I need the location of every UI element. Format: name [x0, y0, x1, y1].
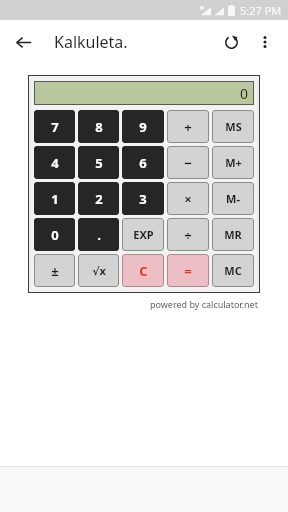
button[interactable]: M+: [212, 146, 254, 179]
staticText: 9: [139, 118, 147, 136]
staticText: 2: [95, 190, 103, 208]
staticText: 1: [51, 190, 59, 208]
button[interactable]: 8: [78, 110, 119, 143]
button[interactable]: More options: [248, 25, 282, 59]
button[interactable]: √x: [78, 254, 119, 287]
staticText: ±: [51, 262, 59, 280]
button[interactable]: M-: [212, 182, 254, 215]
button[interactable]: Back: [6, 25, 40, 59]
button[interactable]: 6: [122, 146, 164, 179]
button[interactable]: 2: [78, 182, 119, 215]
button[interactable]: MS: [212, 110, 254, 143]
staticText: 0: [240, 84, 249, 103]
staticText: 5: [95, 154, 103, 172]
button[interactable]: .: [78, 218, 119, 251]
button[interactable]: ×: [167, 182, 209, 215]
staticText: 5:27 PM: [240, 3, 282, 18]
staticText: C: [139, 262, 148, 280]
staticText: .: [97, 226, 101, 244]
staticText: MS: [225, 119, 242, 134]
button[interactable]: EXP: [122, 218, 164, 251]
staticText: 6: [139, 154, 147, 172]
button[interactable]: ÷: [167, 218, 209, 251]
button[interactable]: 3: [122, 182, 164, 215]
staticText: √x: [92, 263, 106, 278]
staticText: ÷: [184, 226, 192, 244]
staticText: =: [184, 262, 192, 280]
button[interactable]: 7: [34, 110, 75, 143]
staticText: +: [184, 118, 192, 136]
staticText: 3: [139, 190, 147, 208]
staticText: MR: [224, 227, 242, 242]
staticText: −: [184, 154, 192, 172]
staticText: EXP: [133, 227, 154, 242]
button[interactable]: MR: [212, 218, 254, 251]
staticText: ×: [184, 190, 192, 208]
button[interactable]: =: [167, 254, 209, 287]
button[interactable]: −: [167, 146, 209, 179]
button[interactable]: 4: [34, 146, 75, 179]
staticText: 0: [51, 226, 59, 244]
staticText: 4: [51, 154, 59, 172]
button[interactable]: MC: [212, 254, 254, 287]
button[interactable]: Refresh: [214, 25, 248, 59]
staticText: M+: [225, 155, 242, 170]
button[interactable]: 5: [78, 146, 119, 179]
button[interactable]: ±: [34, 254, 75, 287]
button[interactable]: +: [167, 110, 209, 143]
button[interactable]: 0: [34, 218, 75, 251]
button[interactable]: 1: [34, 182, 75, 215]
staticText: M-: [226, 191, 240, 206]
button[interactable]: 9: [122, 110, 164, 143]
staticText: MC: [224, 263, 242, 278]
staticText: powered by calculator.net: [150, 298, 258, 310]
staticText: Kalkuleta.: [54, 31, 128, 53]
button[interactable]: C: [122, 254, 164, 287]
staticText: 7: [51, 118, 59, 136]
staticText: 8: [95, 118, 103, 136]
